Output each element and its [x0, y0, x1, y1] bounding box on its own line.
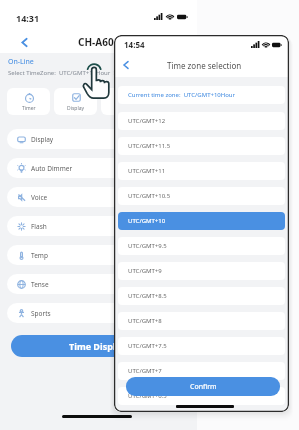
staticText: Time Display — [69, 340, 127, 352]
button[interactable]: UTC/GMT+11.5 — [118, 137, 285, 155]
staticText: 14:54 — [124, 39, 145, 50]
staticText: Sports — [31, 309, 51, 318]
staticText: Timer — [22, 105, 36, 112]
button[interactable]: Display — [7, 129, 197, 149]
button[interactable]: Voice — [7, 187, 197, 207]
staticText: Flash — [31, 222, 47, 231]
button[interactable]: Back — [17, 35, 31, 49]
staticText: Voice — [31, 193, 48, 202]
button[interactable]: Back — [119, 58, 133, 72]
button[interactable]: Flash — [7, 216, 197, 236]
staticText: CH-A601 — [78, 35, 120, 49]
staticText: UTC/GMT+11 — [128, 167, 166, 175]
button[interactable]: UTC/GMT+12 — [118, 112, 285, 130]
button[interactable]: More — [148, 88, 191, 115]
staticText: Auto Dimmer — [31, 164, 73, 173]
staticText: UTC/GMT+8.5 — [128, 292, 167, 300]
staticText: Confirm — [190, 382, 217, 392]
staticText: UTC/GMT+8 — [128, 317, 162, 325]
staticText: 14:31 — [16, 12, 40, 24]
staticText: Time zone selection — [167, 60, 242, 71]
staticText: UTC/GMT+6.5 — [128, 392, 167, 400]
staticText: Current time zone: UTC/GMT+10Hour — [128, 91, 236, 99]
button[interactable]: UTC/GMT+10 — [118, 212, 285, 230]
staticText: UTC/GMT+7.5 — [128, 342, 167, 350]
staticText: UTC/GMT+9 — [128, 267, 162, 275]
button[interactable]: UTC/GMT+9 — [118, 262, 285, 280]
button[interactable]: UTC/GMT+8 — [118, 312, 285, 330]
button[interactable]: Auto Dimmer — [7, 158, 197, 178]
button[interactable]: Confirm — [126, 377, 280, 396]
staticText: UTC/GMT+7 — [128, 367, 162, 375]
button[interactable]: UTC/GMT+7.5 — [118, 337, 285, 355]
button[interactable]: Tense — [7, 274, 197, 294]
staticText: Bright — [115, 105, 130, 112]
staticText: Tense — [31, 280, 49, 289]
staticText: UTC/GMT+11.5 — [128, 142, 171, 150]
staticText: UTC/GMT+12 — [128, 117, 166, 125]
staticText: Temp — [31, 251, 48, 260]
staticText: Display — [67, 105, 85, 112]
staticText: Select TimeZone: UTC/GMT+10Hour > — [8, 69, 117, 77]
button[interactable]: UTC/GMT+11 — [118, 162, 285, 180]
button[interactable]: Display — [54, 88, 97, 115]
staticText: On-Line — [8, 57, 34, 67]
button[interactable]: UTC/GMT+7 — [118, 362, 285, 380]
staticText: UTC/GMT+10 — [128, 217, 166, 225]
button[interactable]: UTC/GMT+8.5 — [118, 287, 285, 305]
button[interactable]: UTC/GMT+10.5 — [118, 187, 285, 205]
staticText: UTC/GMT+10.5 — [128, 192, 171, 200]
button[interactable]: Temp — [7, 245, 197, 265]
button[interactable]: Time Display — [11, 335, 185, 357]
staticText: UTC/GMT+9.5 — [128, 242, 167, 250]
button[interactable]: Timer — [7, 88, 50, 115]
button[interactable]: Sports — [7, 303, 197, 323]
button[interactable]: UTC/GMT+6.5 — [118, 387, 285, 405]
button[interactable]: Bright — [101, 88, 144, 115]
staticText: Display — [31, 135, 54, 144]
button[interactable]: Current time zone: UTC/GMT+10Hour — [118, 86, 285, 104]
button[interactable]: UTC/GMT+9.5 — [118, 237, 285, 255]
